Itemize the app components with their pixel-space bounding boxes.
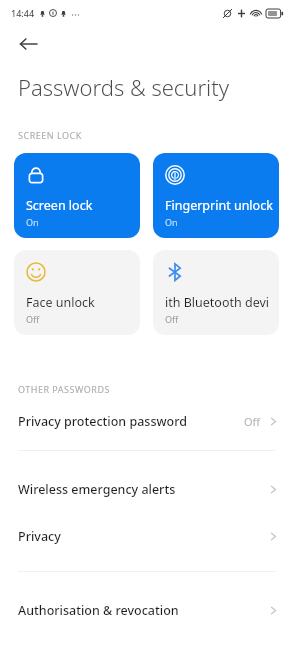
button[interactable]: Authorisation & revocation bbox=[0, 598, 293, 623]
staticText: SCREEN LOCK bbox=[18, 129, 82, 141]
staticText: Screen lock bbox=[26, 197, 93, 214]
button[interactable]: Privacy bbox=[0, 524, 293, 549]
staticText: OTHER PASSWORDS bbox=[18, 383, 110, 395]
staticText: Off bbox=[26, 313, 40, 325]
staticText: Wireless emergency alerts bbox=[18, 481, 268, 498]
staticText: On bbox=[165, 216, 178, 228]
staticText: Passwords & security bbox=[18, 72, 229, 102]
staticText: Off bbox=[244, 414, 261, 429]
staticText: Privacy protection password bbox=[18, 413, 244, 430]
button[interactable]: Unlock with Bluetooth device bbox=[153, 250, 279, 335]
staticText: Off bbox=[165, 313, 179, 325]
staticText: Fingerprint unlock bbox=[165, 197, 273, 214]
staticText: ith Bluetooth devi bbox=[165, 294, 270, 311]
button[interactable]: Wireless emergency alerts bbox=[0, 477, 293, 502]
button[interactable]: Privacy protection password bbox=[0, 409, 293, 434]
staticText: Authorisation & revocation bbox=[18, 602, 268, 619]
button[interactable]: Face unlock bbox=[14, 250, 140, 335]
button[interactable]: Screen lock bbox=[14, 153, 140, 238]
staticText: On bbox=[26, 216, 39, 228]
button[interactable]: Back bbox=[10, 26, 46, 62]
staticText: Face unlock bbox=[26, 294, 95, 311]
staticText: Privacy bbox=[18, 528, 268, 545]
button[interactable]: Fingerprint unlock bbox=[153, 153, 279, 238]
staticText: 14:44 bbox=[11, 7, 35, 19]
